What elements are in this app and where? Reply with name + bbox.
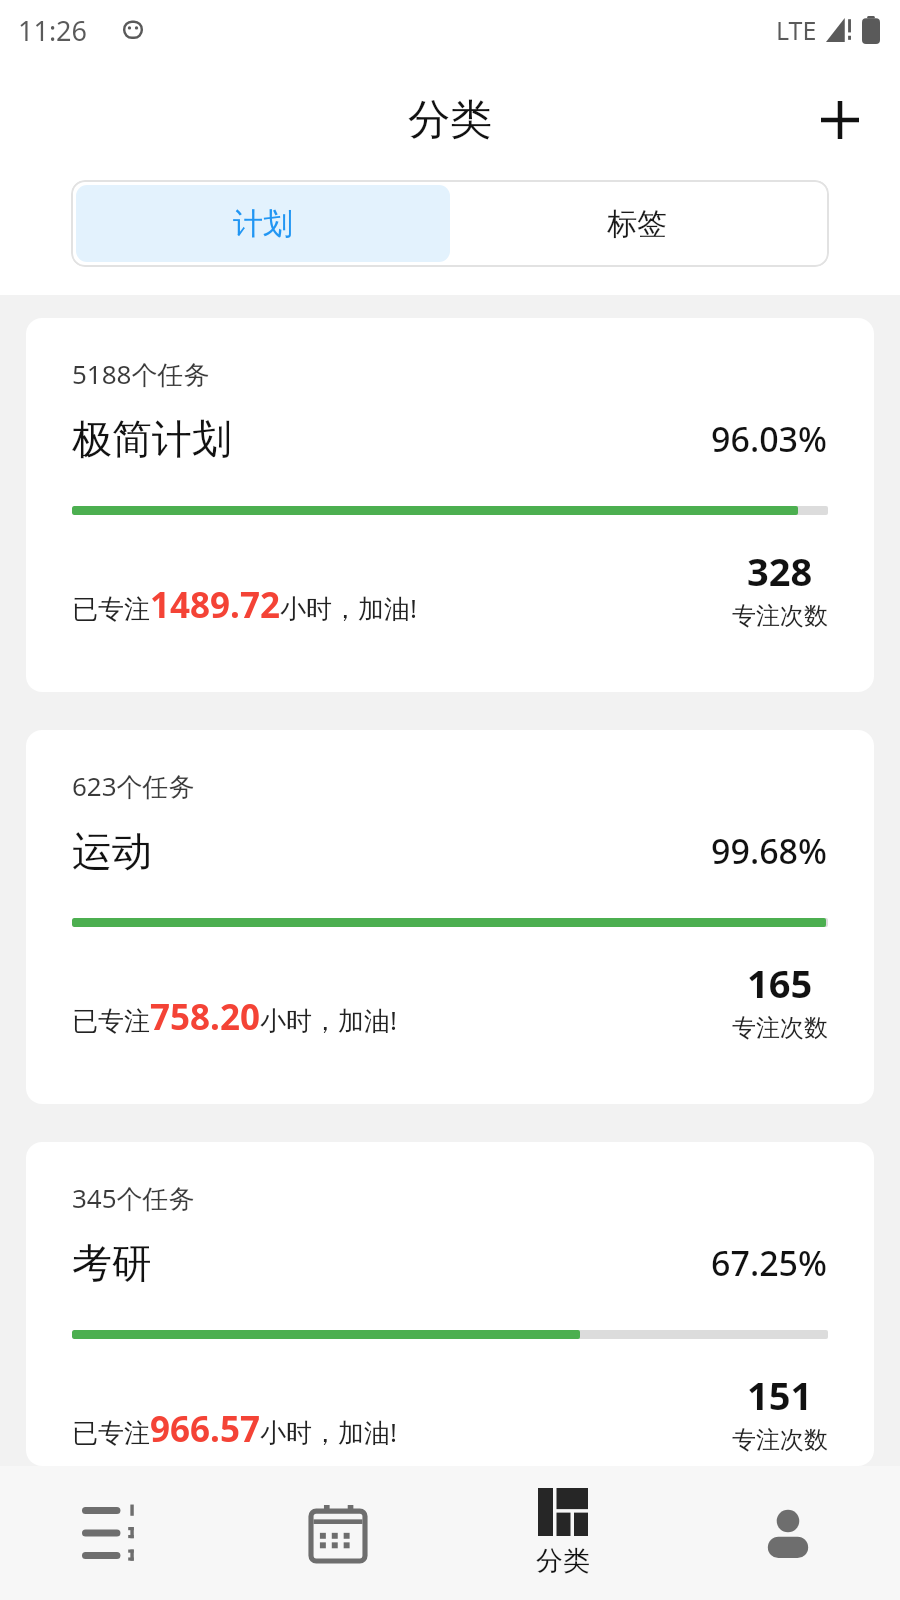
staticText: 328 — [747, 545, 813, 597]
button[interactable]: 标签 — [450, 185, 824, 262]
staticText: 计划 — [233, 205, 293, 243]
staticText: 已专注1489.72小时，加油! — [72, 581, 417, 629]
button[interactable]: 分类 — [450, 1466, 675, 1600]
staticText: 165 — [747, 957, 813, 1009]
button[interactable]: 345个任务 — [26, 1142, 874, 1466]
staticText: 151 — [747, 1369, 813, 1421]
staticText: 极简计划 — [72, 414, 232, 464]
staticText: 345个任务 — [72, 1180, 195, 1216]
staticText: 专注次数 — [732, 601, 828, 631]
button[interactable]: 5188个任务 — [26, 318, 874, 692]
staticText: 67.25% — [711, 1240, 828, 1286]
staticText: 5188个任务 — [72, 356, 210, 392]
button[interactable]: Add category — [804, 84, 876, 156]
button[interactable]: 623个任务 — [26, 730, 874, 1104]
staticText: 分类 — [536, 1544, 590, 1578]
staticText: 运动 — [72, 826, 152, 876]
staticText: 标签 — [607, 205, 667, 243]
button[interactable]: Calendar — [225, 1466, 450, 1600]
staticText: 623个任务 — [72, 768, 195, 804]
staticText: 已专注758.20小时，加油! — [72, 993, 397, 1041]
staticText: 考研 — [72, 1238, 152, 1288]
button[interactable]: Profile — [675, 1466, 900, 1600]
staticText: LTE — [776, 13, 817, 47]
staticText: 99.68% — [711, 828, 828, 874]
staticText: 11:26 — [18, 12, 88, 49]
staticText: 已专注966.57小时，加油! — [72, 1405, 397, 1453]
button[interactable]: Tasks — [0, 1466, 225, 1600]
button[interactable]: 计划 — [76, 185, 450, 262]
staticText: 分类 — [408, 94, 492, 147]
staticText: 专注次数 — [732, 1425, 828, 1455]
staticText: 96.03% — [711, 416, 828, 462]
staticText: 专注次数 — [732, 1013, 828, 1043]
